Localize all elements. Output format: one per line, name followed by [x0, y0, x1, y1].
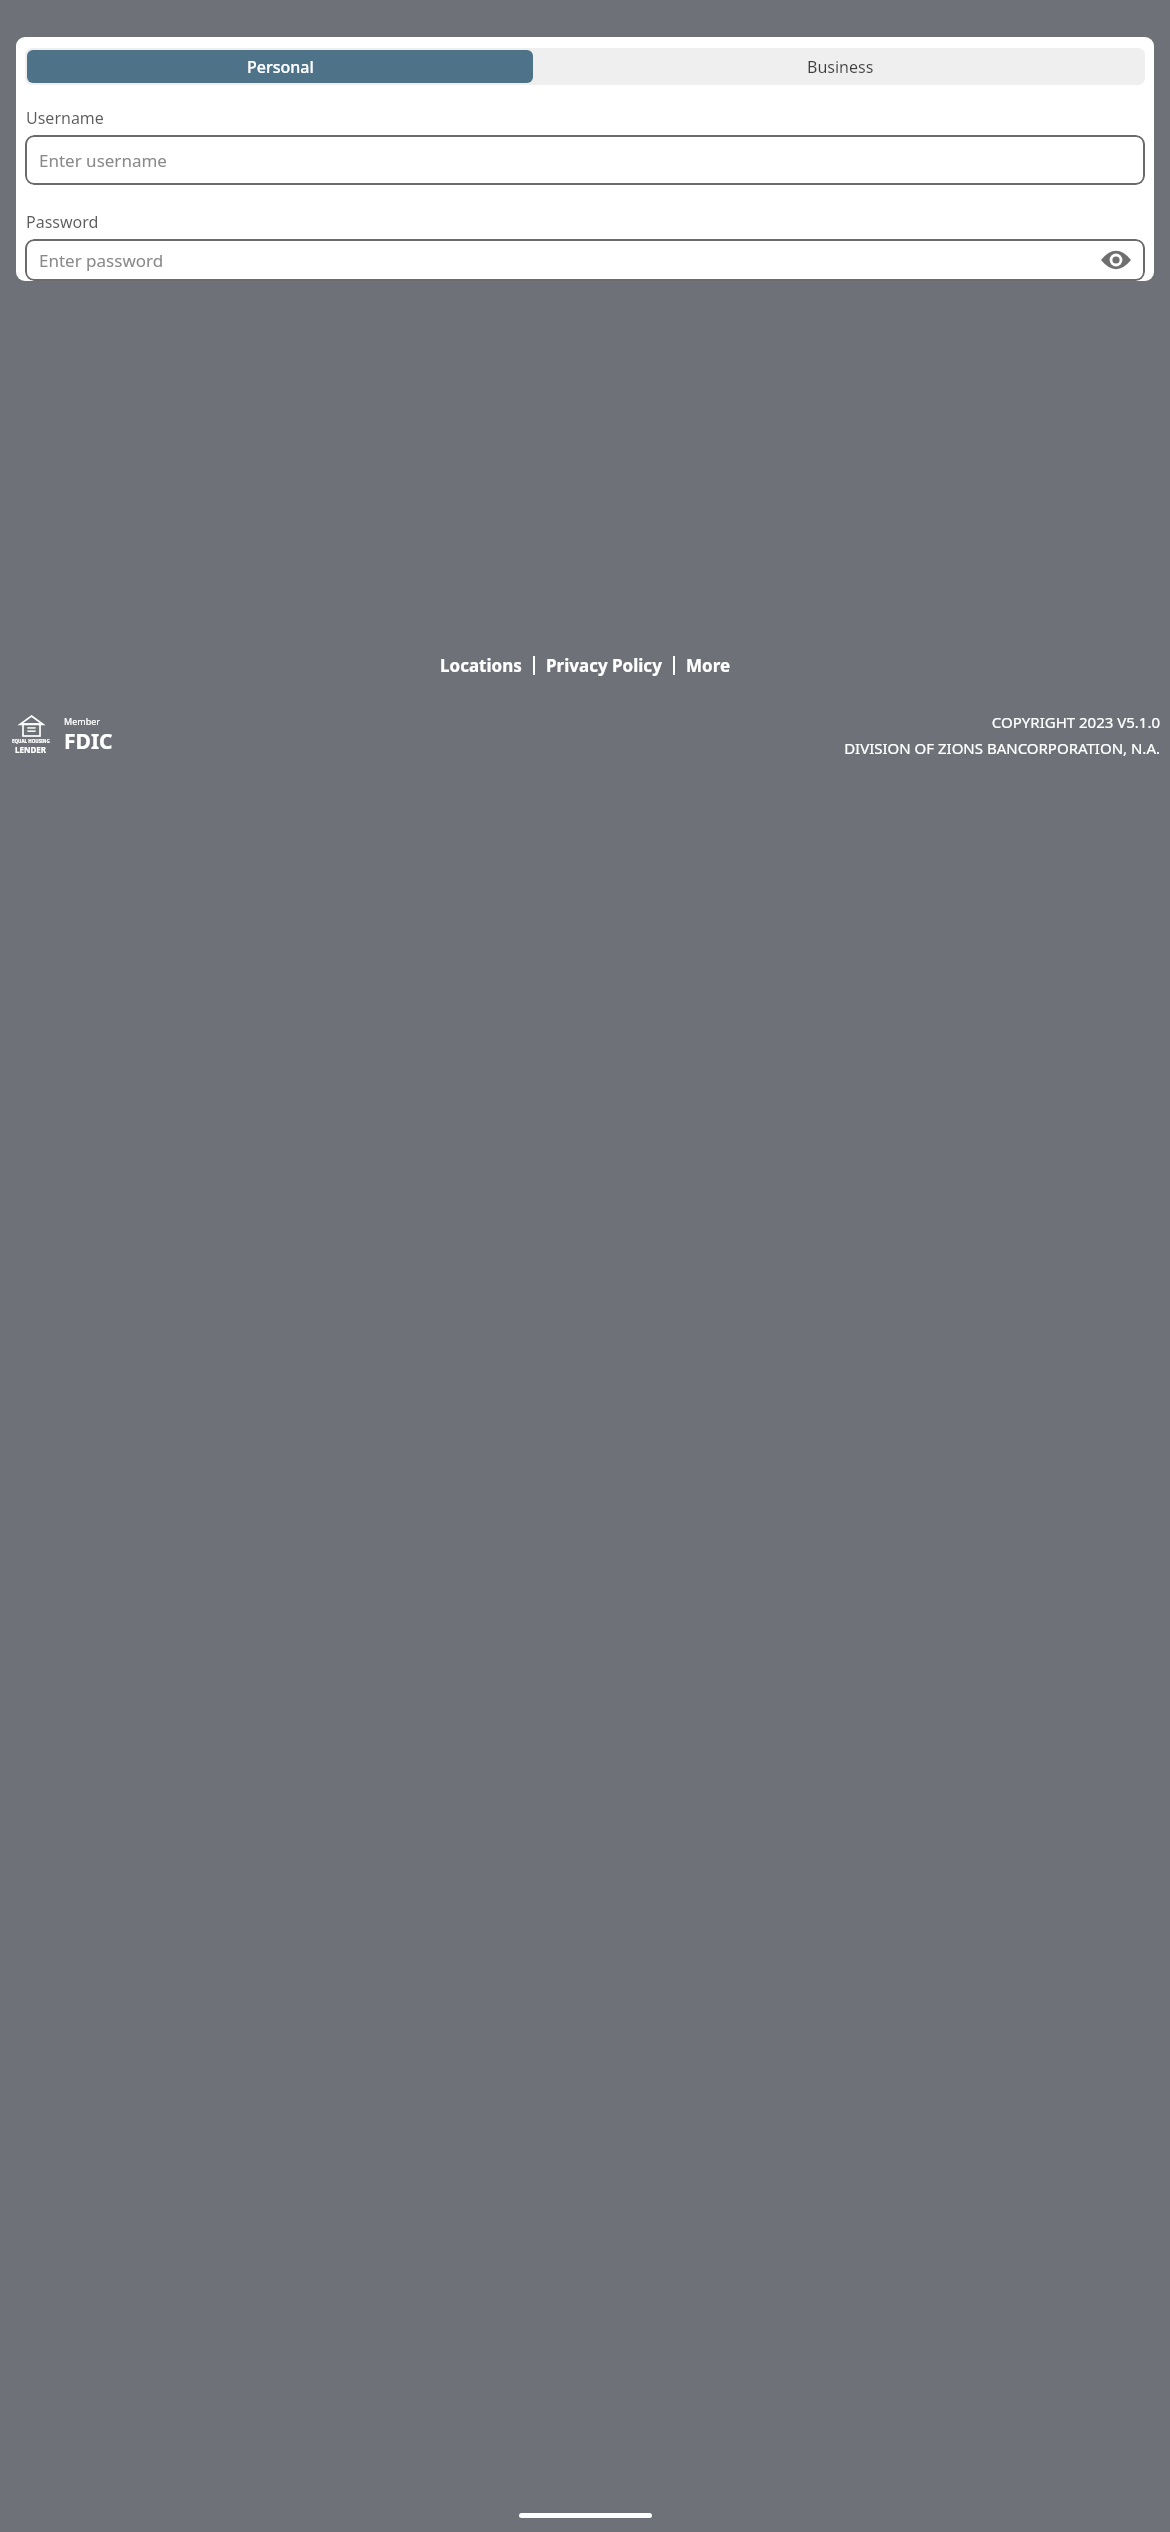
staticText: Member [64, 715, 100, 727]
button[interactable]: Show password [1099, 243, 1133, 277]
staticText: Locations [440, 654, 522, 677]
staticText: Personal [247, 56, 314, 78]
staticText: DIVISION OF ZIONS BANCORPORATION, N.A. [844, 738, 1160, 758]
staticText: Username [26, 107, 104, 129]
staticText: COPYRIGHT 2023 V5.1.0 [991, 712, 1160, 732]
staticText: EQUAL HOUSING [12, 738, 50, 744]
staticText: LENDER [15, 744, 47, 755]
button[interactable]: Personal [27, 50, 533, 83]
staticText: More [686, 654, 731, 677]
staticText: Enter username [39, 149, 167, 172]
button[interactable]: Enter password [25, 239, 1145, 281]
button[interactable]: Business [535, 48, 1145, 85]
staticText: Business [807, 56, 874, 78]
staticText: Enter password [39, 249, 164, 272]
button[interactable]: More [686, 650, 731, 681]
button[interactable]: Locations [440, 650, 522, 681]
button[interactable]: Enter username [25, 135, 1145, 185]
staticText: Privacy Policy [546, 654, 662, 677]
staticText: Password [26, 211, 99, 233]
button[interactable]: Privacy Policy [546, 650, 662, 681]
staticText: FDIC [64, 727, 113, 756]
